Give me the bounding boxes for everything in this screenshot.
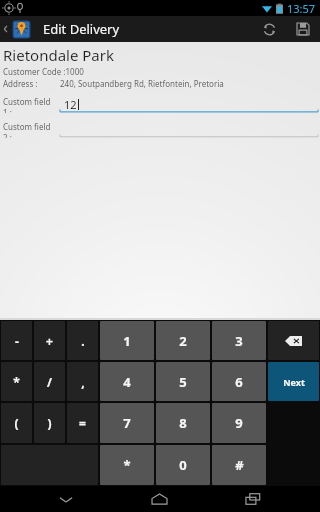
button[interactable]: . bbox=[67, 321, 98, 360]
button[interactable]: ( bbox=[1, 403, 32, 443]
button[interactable]: 5 bbox=[156, 362, 210, 401]
button[interactable]: 1 bbox=[100, 321, 154, 360]
staticText: 0 bbox=[179, 456, 187, 474]
button[interactable]: Hide keyboard bbox=[39, 486, 93, 512]
staticText: Custom field 1 : bbox=[3, 96, 60, 113]
staticText: 13:57 bbox=[287, 1, 316, 16]
staticText: ) bbox=[47, 415, 52, 431]
button[interactable]: - bbox=[1, 321, 32, 360]
staticText: 4 bbox=[123, 373, 131, 391]
button[interactable]: / bbox=[34, 362, 65, 401]
staticText: Customer Code :1000 bbox=[3, 66, 84, 77]
button[interactable]: 0 bbox=[156, 445, 210, 485]
staticText: 12 bbox=[64, 97, 77, 112]
staticText: ( bbox=[14, 415, 19, 431]
staticText: 3 bbox=[235, 332, 243, 350]
button[interactable]: 9 bbox=[212, 403, 266, 443]
button[interactable]: + bbox=[34, 321, 65, 360]
staticText: + bbox=[46, 333, 53, 349]
button[interactable]: * bbox=[1, 362, 32, 401]
staticText: 2 bbox=[179, 332, 187, 350]
staticText: . bbox=[81, 333, 85, 349]
staticText: Edit Delivery bbox=[43, 20, 120, 38]
button[interactable]: Backspace bbox=[268, 321, 319, 360]
button[interactable]: 8 bbox=[156, 403, 210, 443]
staticText: 6 bbox=[235, 373, 243, 391]
staticText: Rietondale Park bbox=[3, 45, 114, 65]
staticText: 7 bbox=[123, 414, 131, 432]
button[interactable]: 4 bbox=[100, 362, 154, 401]
button[interactable]: ) bbox=[34, 403, 65, 443]
button[interactable]: 3 bbox=[212, 321, 266, 360]
staticText: 5 bbox=[179, 373, 187, 391]
staticText: 240, Soutpandberg Rd, Rietfontein, Preto… bbox=[60, 78, 224, 89]
button[interactable]: 6 bbox=[212, 362, 266, 401]
button[interactable]: 2 bbox=[156, 321, 210, 360]
button[interactable]: Next bbox=[268, 362, 319, 401]
button[interactable]: 7 bbox=[100, 403, 154, 443]
button[interactable]: Save bbox=[286, 16, 320, 42]
staticText: , bbox=[81, 374, 85, 390]
staticText: Next bbox=[283, 376, 305, 388]
staticText: Address : bbox=[3, 78, 60, 89]
button[interactable]: Custom field 1 : bbox=[0, 96, 320, 113]
button[interactable]: , bbox=[67, 362, 98, 401]
button[interactable]: Navigate up bbox=[0, 16, 34, 42]
staticText: 9 bbox=[235, 414, 243, 432]
staticText: Custom field 2 : bbox=[3, 121, 60, 138]
button[interactable]: # bbox=[212, 445, 266, 485]
button[interactable]: = bbox=[67, 403, 98, 443]
staticText: - bbox=[15, 333, 19, 349]
staticText: 8 bbox=[179, 414, 187, 432]
button[interactable]: Refresh bbox=[252, 16, 286, 42]
button[interactable]: Home bbox=[132, 486, 186, 512]
staticText: # bbox=[235, 456, 244, 474]
staticText: * bbox=[13, 374, 20, 390]
staticText: / bbox=[47, 374, 52, 390]
button[interactable]: Recent apps bbox=[226, 486, 280, 512]
staticText: 1 bbox=[123, 332, 131, 350]
staticText: * bbox=[123, 456, 131, 474]
button[interactable]: * bbox=[100, 445, 154, 485]
button[interactable]: Custom field 2 : bbox=[0, 121, 320, 138]
staticText: = bbox=[79, 415, 86, 431]
